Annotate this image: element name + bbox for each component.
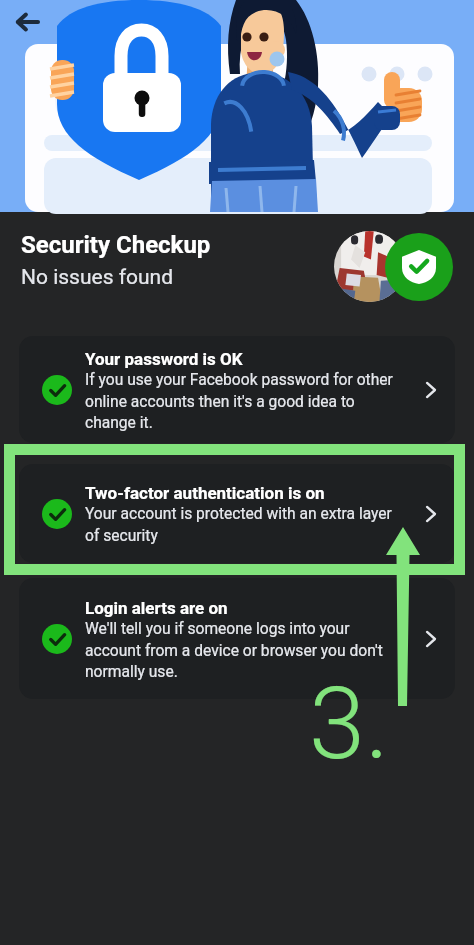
button[interactable]: Two-factor authentication is on [19, 464, 455, 563]
staticText: Login alerts are on [85, 598, 228, 618]
staticText: Two-factor authentication is on [85, 483, 325, 503]
staticText: No issues found [21, 265, 174, 290]
staticText: We'll tell you if someone logs into your… [85, 620, 407, 680]
staticText: 3. [309, 664, 390, 782]
staticText: Your account is protected with an extra … [85, 505, 407, 544]
button[interactable]: Your password is OK [19, 336, 455, 443]
staticText: Security Checkup [21, 231, 211, 259]
staticText: Your password is OK [85, 349, 243, 369]
button[interactable]: Back [5, 0, 49, 44]
button[interactable]: Login alerts are on [19, 578, 455, 699]
staticText: If you use your Facebook password for ot… [85, 371, 407, 431]
button[interactable]: Profile picture [334, 231, 405, 302]
button[interactable]: Security status [385, 233, 453, 301]
